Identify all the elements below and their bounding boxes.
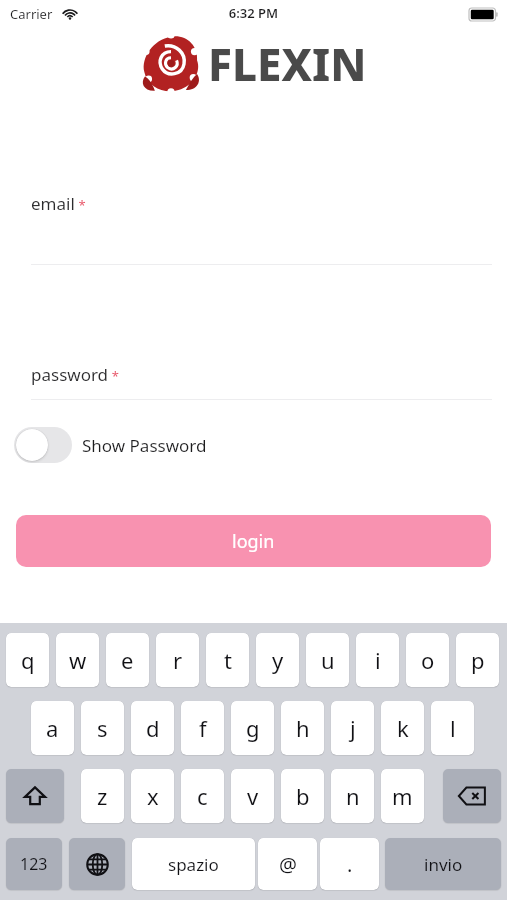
button[interactable]: Shift	[6, 769, 64, 823]
button[interactable]: p	[456, 633, 499, 687]
button[interactable]: d	[131, 701, 174, 755]
staticText: c	[197, 781, 208, 811]
staticText: l	[450, 713, 456, 743]
button[interactable]: q	[6, 633, 49, 687]
button[interactable]: k	[381, 701, 424, 755]
button[interactable]: login	[16, 515, 491, 567]
staticText: t	[224, 645, 232, 675]
staticText: 6:32 PM	[0, 4, 507, 22]
staticText: e	[121, 645, 134, 675]
staticText: login	[232, 529, 275, 554]
button[interactable]: w	[56, 633, 99, 687]
staticText: m	[392, 781, 413, 811]
staticText: y	[272, 645, 284, 675]
button[interactable]: u	[306, 633, 349, 687]
button[interactable]: i	[356, 633, 399, 687]
button[interactable]: Show password toggle	[14, 427, 72, 463]
button[interactable]: f	[181, 701, 224, 755]
button[interactable]: c	[181, 769, 224, 823]
staticText: w	[69, 645, 87, 675]
button[interactable]: Change keyboard language	[69, 838, 125, 890]
button[interactable]: h	[281, 701, 324, 755]
button[interactable]: a	[31, 701, 74, 755]
staticText: email *	[31, 192, 86, 215]
staticText: spazio	[168, 853, 219, 876]
staticText: n	[346, 781, 360, 811]
staticText: v	[247, 781, 259, 811]
button[interactable]: .	[320, 838, 379, 890]
staticText: @	[279, 851, 297, 878]
staticText: s	[97, 713, 108, 743]
button[interactable]: n	[331, 769, 374, 823]
staticText: k	[397, 713, 409, 743]
button[interactable]: t	[206, 633, 249, 687]
button[interactable]: x	[131, 769, 174, 823]
staticText: Show Password	[82, 434, 207, 457]
staticText: i	[375, 645, 381, 675]
staticText: password *	[31, 363, 119, 386]
staticText: FLEXIN	[208, 34, 367, 94]
button[interactable]: s	[81, 701, 124, 755]
button[interactable]: Backspace	[443, 769, 501, 823]
button[interactable]: v	[231, 769, 274, 823]
staticText: Carrier	[10, 5, 53, 23]
button[interactable]: 123	[6, 838, 62, 890]
staticText: j	[350, 713, 356, 743]
staticText: b	[296, 781, 310, 811]
staticText: x	[147, 781, 159, 811]
staticText: invio	[424, 853, 463, 876]
button[interactable]: g	[231, 701, 274, 755]
staticText: p	[471, 645, 485, 675]
button[interactable]: m	[381, 769, 424, 823]
button[interactable]: o	[406, 633, 449, 687]
button[interactable]: y	[256, 633, 299, 687]
button[interactable]: Show password toggle	[14, 427, 207, 463]
staticText: a	[46, 713, 59, 743]
button[interactable]: r	[156, 633, 199, 687]
button[interactable]: b	[281, 769, 324, 823]
button[interactable]: z	[81, 769, 124, 823]
button[interactable]: invio	[385, 838, 501, 890]
staticText: z	[97, 781, 108, 811]
staticText: q	[21, 645, 35, 675]
staticText: 123	[20, 853, 48, 875]
staticText: g	[246, 713, 260, 743]
button[interactable]: l	[431, 701, 474, 755]
staticText: h	[296, 713, 310, 743]
button[interactable]: j	[331, 701, 374, 755]
button[interactable]: @	[258, 838, 317, 890]
button[interactable]: spazio	[132, 838, 255, 890]
staticText: .	[347, 851, 353, 878]
button[interactable]: e	[106, 633, 149, 687]
staticText: u	[321, 645, 335, 675]
staticText: o	[421, 645, 435, 675]
staticText: f	[199, 713, 207, 743]
staticText: d	[146, 713, 160, 743]
staticText: r	[173, 645, 183, 675]
